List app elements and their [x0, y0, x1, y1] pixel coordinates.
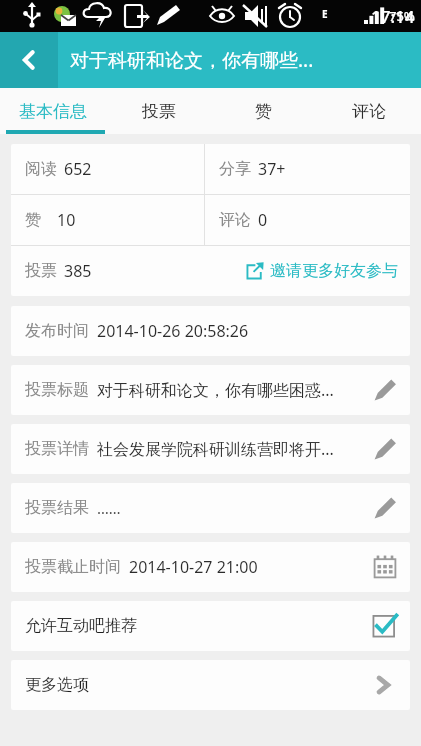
- button[interactable]: 赞: [25, 195, 204, 245]
- button[interactable]: 基本信息: [0, 88, 106, 134]
- staticText: 社会发展学院科研训练营即将开...: [97, 438, 360, 460]
- other: Edit: [372, 377, 398, 403]
- button[interactable]: 允许互动吧推荐: [11, 601, 410, 651]
- staticText: 2014-10-26 20:58:26: [97, 320, 410, 342]
- other: Edit: [372, 495, 398, 521]
- staticText: 75%: [389, 7, 415, 25]
- button[interactable]: 分享: [219, 144, 410, 194]
- staticText: 17:14: [371, 5, 415, 28]
- button[interactable]: 评论: [219, 195, 410, 245]
- button[interactable]: 更多选项: [11, 660, 410, 710]
- staticText: 652: [64, 158, 92, 180]
- staticText: 评论: [352, 101, 386, 122]
- button[interactable]: 投票结果: [11, 483, 410, 533]
- staticText: 赞: [255, 101, 272, 122]
- button[interactable]: 赞: [211, 88, 316, 134]
- button[interactable]: 投票: [106, 88, 211, 134]
- staticText: 更多选项: [25, 675, 372, 695]
- staticText: 投票: [142, 101, 176, 122]
- staticText: 投票详情: [25, 439, 89, 459]
- staticText: ……: [97, 498, 360, 518]
- staticText: 赞: [25, 210, 41, 230]
- staticText: 2014-10-27 21:00: [129, 556, 360, 578]
- staticText: 0: [258, 209, 268, 231]
- staticText: 基本信息: [19, 101, 87, 122]
- other: More options: [372, 674, 394, 696]
- staticText: 发布时间: [25, 321, 89, 341]
- staticText: 37+: [258, 158, 286, 180]
- staticText: 10: [57, 209, 76, 231]
- button[interactable]: 投票截止时间: [11, 542, 410, 592]
- other: Allow recommendation: [372, 614, 396, 638]
- staticText: E: [322, 7, 328, 21]
- button[interactable]: 投票标题: [11, 365, 410, 415]
- button[interactable]: 邀请更多好友参与: [246, 246, 398, 296]
- staticText: 385: [64, 260, 92, 282]
- staticText: 阅读: [25, 159, 57, 179]
- other: Pick date: [372, 554, 398, 580]
- staticText: 投票截止时间: [25, 557, 121, 577]
- button[interactable]: Back: [0, 32, 58, 88]
- staticText: 邀请更多好友参与: [270, 261, 398, 281]
- staticText: 投票标题: [25, 380, 89, 400]
- staticText: 投票结果: [25, 498, 89, 518]
- button[interactable]: 发布时间: [11, 306, 410, 356]
- staticText: 对于科研和论文，你有哪些困惑...: [97, 379, 360, 401]
- staticText: 允许互动吧推荐: [25, 616, 372, 636]
- staticText: 投票: [25, 261, 57, 281]
- staticText: 分享: [219, 159, 251, 179]
- button[interactable]: 投票详情: [11, 424, 410, 474]
- other: Edit: [372, 436, 398, 462]
- staticText: 对于科研和论文，你有哪些...: [70, 47, 314, 73]
- button[interactable]: 评论: [316, 88, 421, 134]
- button[interactable]: 阅读: [25, 144, 204, 194]
- staticText: 评论: [219, 210, 251, 230]
